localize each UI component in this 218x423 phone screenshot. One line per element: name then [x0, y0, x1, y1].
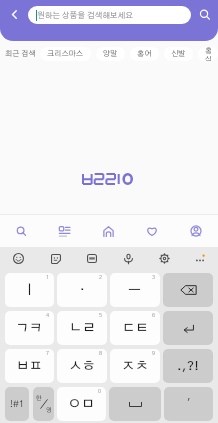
staticText: ㄷㅌ: [122, 322, 149, 335]
staticText: 1: [46, 275, 50, 281]
staticText: 8: [99, 351, 103, 357]
button[interactable]: Profile: [174, 215, 218, 247]
staticText: 양말: [103, 50, 118, 58]
staticText: 신발: [171, 50, 186, 58]
staticText: ㅅㅎ: [69, 360, 96, 373]
staticText: 최근 검색: [5, 50, 36, 58]
button[interactable]: Voice input: [110, 247, 146, 270]
button[interactable]: Backspace: [163, 273, 213, 307]
button[interactable]: ㅣ: [5, 273, 54, 307]
staticText: ㅡ: [128, 284, 142, 297]
button[interactable]: 신발: [164, 47, 193, 61]
staticText: 7: [46, 351, 50, 357]
staticText: 원하는 상품을 검색해보세요: [37, 12, 134, 20]
staticText: 홍삼: [205, 47, 211, 61]
button[interactable]: 한: [33, 387, 54, 421]
staticText: !#1: [10, 400, 25, 409]
button[interactable]: ·: [57, 273, 107, 307]
button[interactable]: 원하는 상품을 검색해보세요: [28, 6, 191, 24]
button[interactable]: ㅇㅁ: [57, 387, 106, 421]
button[interactable]: GIF: [74, 247, 110, 270]
button[interactable]: Search: [0, 215, 43, 247]
staticText: ㅈㅊ: [122, 360, 149, 373]
button[interactable]: !#1: [5, 387, 29, 421]
staticText: 한: [36, 395, 42, 401]
button[interactable]: 양말: [96, 47, 125, 61]
staticText: 6: [152, 313, 156, 319]
button[interactable]: Settings: [146, 247, 182, 270]
staticText: 3: [152, 275, 156, 281]
button[interactable]: ': [164, 387, 213, 421]
staticText: 5: [99, 313, 103, 319]
staticText: ㅇㅁ: [68, 398, 95, 411]
staticText: 홍어: [137, 50, 152, 58]
button[interactable]: ㄷㅌ: [110, 311, 160, 345]
button[interactable]: Home: [86, 215, 130, 247]
button[interactable]: 홍삼: [198, 47, 218, 61]
button[interactable]: ㄱㅋ: [5, 311, 54, 345]
button[interactable]: Space: [109, 387, 161, 421]
staticText: ': [187, 399, 190, 409]
staticText: ㅂㅍ: [16, 360, 43, 373]
button[interactable]: ㅂㅍ: [5, 349, 54, 383]
staticText: 0: [98, 389, 102, 395]
button[interactable]: ㅈㅊ: [110, 349, 160, 383]
button[interactable]: 크리스마스: [40, 47, 91, 61]
button[interactable]: Sticker: [37, 247, 74, 270]
button[interactable]: ㅡ: [110, 273, 160, 307]
staticText: 4: [46, 313, 50, 319]
staticText: .,?!: [177, 360, 199, 373]
staticText: 9: [152, 351, 156, 357]
staticText: ㅣ: [23, 284, 37, 297]
button[interactable]: Enter: [163, 311, 213, 345]
staticText: 크리스마스: [47, 50, 84, 58]
button[interactable]: Back: [0, 0, 28, 29]
button[interactable]: Emoji: [0, 247, 37, 270]
staticText: ·: [80, 284, 85, 297]
button[interactable]: More options: [182, 247, 218, 270]
button[interactable]: Feed: [43, 215, 86, 247]
staticText: 영: [46, 407, 52, 413]
button[interactable]: ㄴㄹ: [57, 311, 107, 345]
staticText: 2: [99, 275, 103, 281]
staticText: ㄴㄹ: [69, 322, 96, 335]
button[interactable]: 홍어: [130, 47, 159, 61]
button[interactable]: .,?!: [163, 349, 213, 383]
button[interactable]: Likes: [130, 215, 174, 247]
staticText: ㄱㅋ: [16, 322, 43, 335]
button[interactable]: Search: [191, 0, 218, 29]
button[interactable]: ㅅㅎ: [57, 349, 107, 383]
